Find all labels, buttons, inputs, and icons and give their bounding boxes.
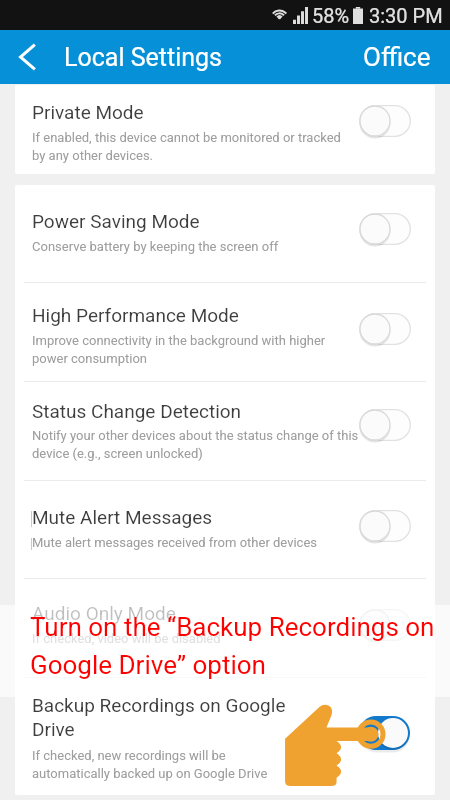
staticText: Conserve battery by keeping the screen o… xyxy=(32,239,279,254)
button[interactable]: Power Saving Mode xyxy=(15,185,435,283)
staticText: 3:30 PM xyxy=(369,4,443,27)
staticText: Office xyxy=(363,42,431,72)
staticText: High Performance Mode xyxy=(32,304,239,326)
button[interactable]: Audio Only Mode xyxy=(15,579,435,678)
staticText: Private Mode xyxy=(32,101,144,123)
button[interactable]: Backup Recordings on Google Drive xyxy=(15,678,435,795)
staticText: Turn on the “Backup Recordings on Google… xyxy=(30,612,435,681)
staticText: Mute Alert Messages xyxy=(32,506,213,528)
staticText: If enabled, this device cannot be monito… xyxy=(32,130,341,163)
staticText: Audio Only Mode xyxy=(32,602,176,624)
button[interactable]: Office xyxy=(344,32,450,82)
staticText: Status Change Detection xyxy=(32,400,242,422)
button[interactable]: Status Change Detection xyxy=(15,382,435,481)
staticText: If checked, video will be disabled xyxy=(32,631,221,646)
button[interactable]: High Performance Mode xyxy=(15,283,435,382)
staticText: Mute alert messages received from other … xyxy=(32,535,318,550)
button[interactable]: Back xyxy=(3,33,51,81)
staticText: Power Saving Mode xyxy=(32,210,200,232)
staticText: Backup Recordings on Google Drive xyxy=(32,694,286,740)
staticText: If checked, new recordings will be autom… xyxy=(32,748,268,781)
button[interactable]: Mute Alert Messages xyxy=(15,481,435,579)
staticText: Local Settings xyxy=(64,43,222,72)
staticText: Notify your other devices about the stat… xyxy=(32,428,359,461)
staticText: Improve connectivity in the background w… xyxy=(32,333,326,366)
staticText: 58% xyxy=(312,4,350,27)
button[interactable]: Private Mode xyxy=(15,85,435,174)
